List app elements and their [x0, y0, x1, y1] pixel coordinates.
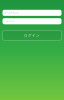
button[interactable]: パスワード — [2, 18, 61, 24]
staticText: ログイン — [24, 33, 40, 37]
button[interactable]: メールアドレス — [2, 10, 61, 16]
staticText: パスワード — [4, 20, 14, 22]
staticText: メールアドレス — [4, 12, 18, 14]
button[interactable]: ログイン — [2, 30, 61, 40]
